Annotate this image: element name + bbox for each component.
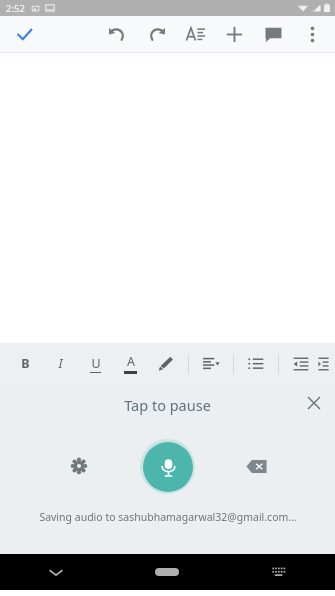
button[interactable]: Undo [98,16,137,53]
button[interactable]: Close voice typing [297,386,331,420]
button[interactable]: Comments [254,16,293,53]
staticText: B [21,355,30,372]
staticText: I [58,355,63,372]
button[interactable]: More options [293,16,332,53]
staticText: U [91,355,101,372]
staticText: 2:52 [6,2,25,15]
button[interactable]: Decrease indent [283,343,318,384]
button[interactable]: Switch keyboard [223,554,335,590]
button[interactable]: Redo [137,16,176,53]
button[interactable]: Done [0,16,48,53]
button[interactable]: Text color [113,343,148,384]
button[interactable]: Bulleted list [238,343,273,384]
staticText: A [127,353,135,370]
staticText: Saving audio to sashubhamagarwal32@gmail… [39,510,297,524]
button[interactable]: Highlight color [148,343,183,384]
button[interactable]: Increase indent [318,343,329,384]
button[interactable]: Insert [215,16,254,53]
button[interactable]: Text formatting [176,16,215,53]
button[interactable]: Italic [43,343,78,384]
button[interactable]: Pause voice typing [143,442,193,492]
staticText: Tap to pause [124,395,211,415]
button[interactable]: Voice typing settings [56,443,102,489]
button[interactable]: Underline [78,343,113,384]
button[interactable]: Alignment [193,343,228,384]
button[interactable]: Home [111,554,223,590]
button[interactable]: Bold [8,343,43,384]
button[interactable]: Back [0,554,111,590]
button[interactable]: Delete [233,443,279,489]
